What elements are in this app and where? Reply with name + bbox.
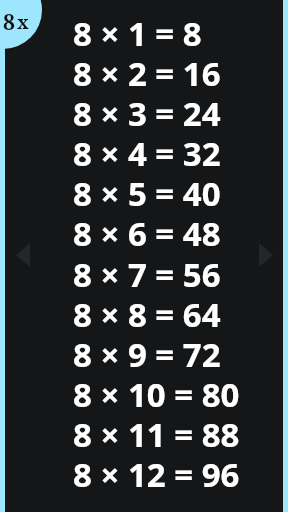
button[interactable]: 8 × 10 = 80 <box>73 372 253 412</box>
staticText: x <box>17 10 29 35</box>
button[interactable]: 8 × 8 = 64 <box>73 292 253 332</box>
staticText: 8 × 3 = 24 <box>73 91 221 131</box>
staticText: 8 × 6 = 48 <box>73 211 221 251</box>
staticText: 8 × 1 = 8 <box>73 11 202 51</box>
staticText: 8 × 11 = 88 <box>73 412 240 452</box>
button[interactable]: 8 × 4 = 32 <box>73 131 253 171</box>
staticText: 8 × 5 = 40 <box>73 171 221 211</box>
button[interactable]: 8 × 12 = 96 <box>73 452 253 492</box>
staticText: 8 × 9 = 72 <box>73 332 221 372</box>
staticText: 8 × 8 = 64 <box>73 292 221 332</box>
button[interactable] <box>0 0 42 49</box>
staticText: 8 × 7 = 56 <box>73 252 221 292</box>
button[interactable]: Previous table <box>16 243 30 267</box>
staticText: 8 × 12 = 96 <box>73 452 240 492</box>
button[interactable]: 8 × 7 = 56 <box>73 252 253 292</box>
button[interactable]: 8 × 5 = 40 <box>73 171 253 211</box>
staticText: 8 × 2 = 16 <box>73 51 221 91</box>
button[interactable]: 8 × 3 = 24 <box>73 91 253 131</box>
button[interactable]: 8 × 11 = 88 <box>73 412 253 452</box>
button[interactable]: 8 × 6 = 48 <box>73 211 253 251</box>
staticText: 8 × 4 = 32 <box>73 131 221 171</box>
button[interactable]: 8 × 9 = 72 <box>73 332 253 372</box>
button[interactable]: 8 × 2 = 16 <box>73 51 253 91</box>
button[interactable]: Next table <box>259 243 273 267</box>
staticText: 8 × 10 = 80 <box>73 372 240 412</box>
button[interactable]: 8 × 1 = 8 <box>73 11 253 51</box>
staticText: 8 <box>3 8 15 37</box>
